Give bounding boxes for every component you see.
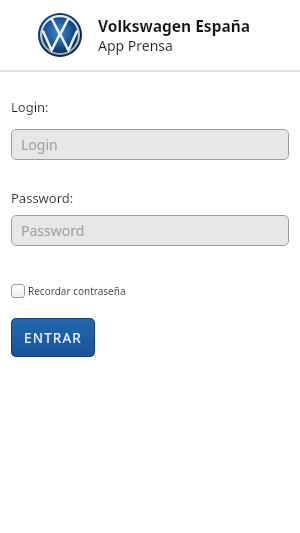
staticText: Password: [11,189,74,207]
staticText: Login: [11,98,49,116]
staticText: App Prensa [98,36,173,55]
staticText: ENTRAR [24,329,82,347]
button[interactable]: Password [11,215,289,246]
staticText: Login [21,135,58,154]
staticText: Recordar contraseña [28,284,126,298]
staticText: Password [21,221,85,240]
button[interactable]: Login [11,129,289,160]
button[interactable]: ENTRAR [11,318,95,357]
staticText: Volkswagen España [98,15,251,36]
button[interactable]: Recordar contraseña [11,284,126,298]
